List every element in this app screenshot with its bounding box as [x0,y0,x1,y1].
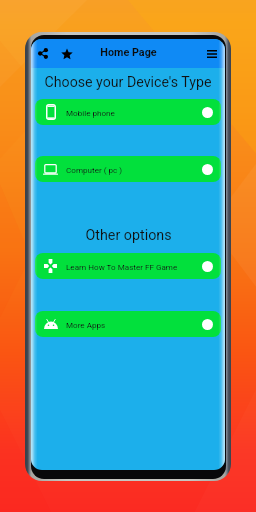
staticText: Home Page [100,46,157,59]
staticText: Learn How To Master FF Game [66,262,178,271]
button[interactable]: Share [32,43,53,64]
button[interactable]: Learn How To Master FF Game [35,253,221,279]
staticText: Other options [85,227,172,244]
button[interactable]: Rate app [56,43,77,64]
staticText: Computer ( pc ) [66,165,123,174]
staticText: Choose your Device's Type [44,74,212,91]
staticText: More Apps [66,320,106,329]
button[interactable]: Computer ( pc ) [35,156,221,182]
button[interactable]: Menu [201,43,222,64]
button[interactable]: More Apps [35,311,221,337]
button[interactable]: Mobile phone [35,99,221,125]
staticText: Mobile phone [66,108,115,117]
